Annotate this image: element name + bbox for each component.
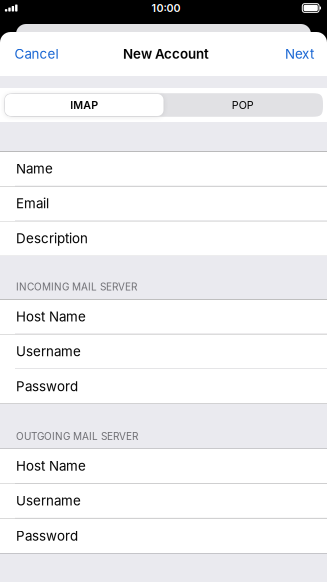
staticText: Next <box>285 46 314 62</box>
button[interactable]: IMAP <box>5 94 163 116</box>
staticText: Name <box>16 161 53 177</box>
button[interactable]: Password <box>0 518 327 553</box>
staticText: 10:00 <box>151 1 180 14</box>
button[interactable]: Username <box>0 334 327 369</box>
button[interactable]: Host Name <box>0 299 327 334</box>
button[interactable]: Description <box>0 221 327 256</box>
button[interactable]: Name <box>0 151 327 186</box>
button[interactable]: Host Name <box>0 449 327 484</box>
staticText: Username <box>16 493 81 509</box>
button[interactable]: Email <box>0 186 327 221</box>
staticText: IMAP <box>70 98 98 111</box>
staticText: Host Name <box>16 308 86 325</box>
button[interactable]: Cancel <box>0 32 73 76</box>
button[interactable]: Username <box>0 484 327 518</box>
staticText: Password <box>16 528 78 544</box>
staticText: New Account <box>123 46 209 62</box>
button[interactable]: POP <box>163 94 322 116</box>
staticText: Cancel <box>14 46 58 62</box>
button[interactable]: Next <box>272 32 327 76</box>
button[interactable]: Password <box>0 369 327 404</box>
staticText: OUTGOING MAIL SERVER <box>16 430 138 442</box>
staticText: Email <box>16 195 49 211</box>
staticText: Username <box>16 343 81 359</box>
staticText: POP <box>232 98 254 111</box>
staticText: Password <box>16 378 78 394</box>
staticText: Description <box>16 230 88 246</box>
staticText: INCOMING MAIL SERVER <box>16 281 137 293</box>
staticText: Host Name <box>16 458 86 474</box>
